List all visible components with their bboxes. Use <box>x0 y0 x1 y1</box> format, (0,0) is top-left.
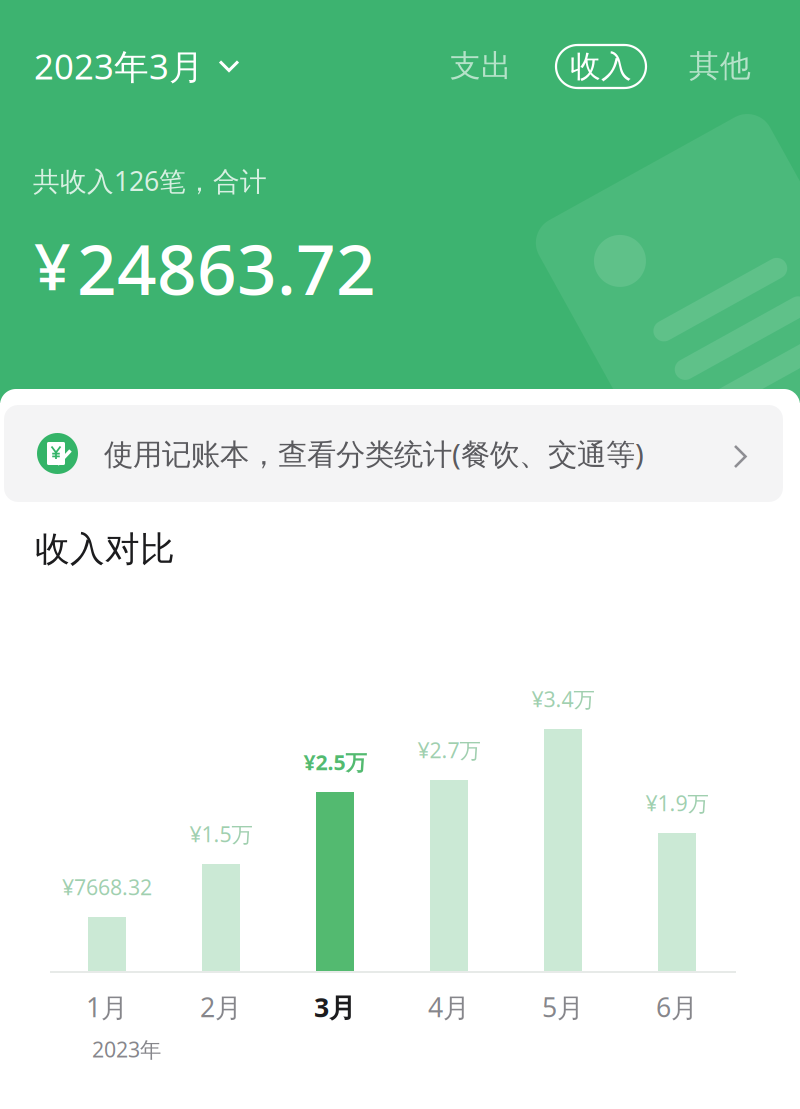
staticText: 使用记账本，查看分类统计(餐饮、交通等) <box>104 434 644 473</box>
staticText: 1月 <box>86 989 128 1025</box>
staticText: 2023年 <box>92 1035 161 1063</box>
staticText: 2月 <box>200 989 242 1025</box>
staticText: ¥3.4万 <box>531 685 594 713</box>
staticText: ¥2.7万 <box>417 736 480 764</box>
staticText: 6月 <box>656 989 698 1025</box>
staticText: 5月 <box>542 989 584 1025</box>
button[interactable]: 其他 <box>675 42 765 90</box>
staticText: 收入对比 <box>35 528 175 571</box>
staticText: 3月 <box>314 989 356 1025</box>
staticText: 收入 <box>570 48 632 85</box>
staticText: 共收入126笔，合计 <box>33 163 267 198</box>
button[interactable]: 收入 <box>556 45 646 88</box>
staticText: 支出 <box>450 47 512 85</box>
staticText: ¥1.9万 <box>645 789 708 817</box>
staticText: ¥ <box>34 223 71 308</box>
staticText: 其他 <box>689 47 751 85</box>
staticText: 4月 <box>428 989 470 1025</box>
staticText: ¥2.5万 <box>303 748 366 776</box>
staticText: 2023年3月 <box>34 43 204 89</box>
button[interactable]: 使用记账本，查看分类统计(餐饮、交通等) <box>4 405 783 502</box>
staticText: ¥7668.32 <box>62 873 152 901</box>
staticText: 24863.72 <box>77 222 376 314</box>
staticText: ¥1.5万 <box>189 820 252 848</box>
button[interactable]: 支出 <box>436 42 526 90</box>
button[interactable]: 2023年3月 <box>34 42 244 90</box>
